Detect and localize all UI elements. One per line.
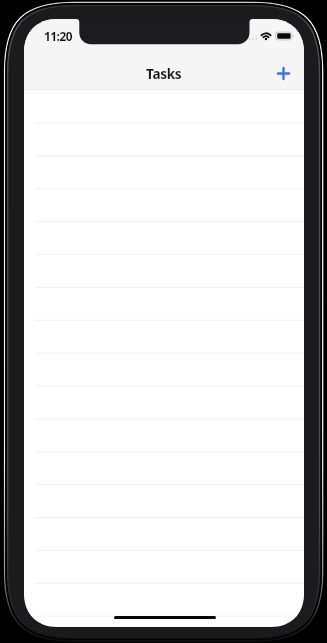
button[interactable] xyxy=(24,585,304,618)
staticText: 11:20 xyxy=(44,28,73,44)
button[interactable] xyxy=(24,618,304,627)
button[interactable]: Add task xyxy=(266,56,300,90)
staticText: Tasks xyxy=(146,64,182,83)
